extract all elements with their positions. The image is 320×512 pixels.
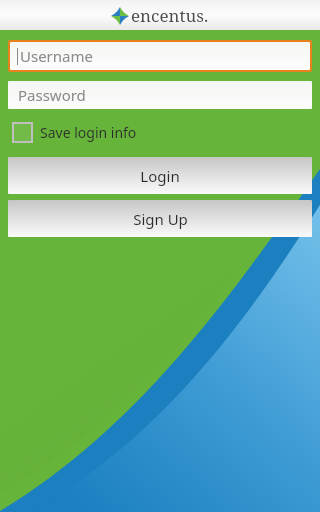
button[interactable]: Username [10, 42, 310, 70]
staticText: Password [18, 85, 86, 105]
staticText: encentus. [131, 4, 209, 27]
button[interactable]: Password [8, 81, 312, 109]
staticText: Username [20, 46, 93, 66]
button[interactable]: Save login info [12, 120, 137, 144]
button[interactable]: Sign Up [8, 200, 312, 237]
staticText: Login [140, 166, 180, 186]
staticText: Save login info [40, 123, 137, 142]
staticText: Sign Up [133, 209, 188, 229]
button[interactable]: Login [8, 157, 312, 194]
